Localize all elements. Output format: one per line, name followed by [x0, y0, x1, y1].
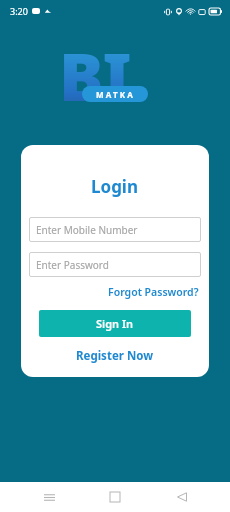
staticText: 3:20	[10, 5, 28, 17]
button[interactable]: Enter Password	[29, 252, 201, 277]
staticText: BIG	[59, 30, 171, 102]
button[interactable]: Back	[164, 482, 200, 512]
button[interactable]: Forgot Password?	[106, 283, 201, 301]
staticText: Forgot Password?	[108, 285, 199, 299]
staticText: MATKA	[96, 89, 135, 100]
staticText: Sign In	[96, 316, 134, 331]
staticText: Enter Mobile Number	[36, 223, 138, 237]
staticText: Login	[91, 175, 139, 198]
button[interactable]: Sign In	[39, 310, 191, 337]
button[interactable]: Home	[97, 482, 133, 512]
button[interactable]: Enter Mobile Number	[29, 217, 201, 242]
staticText: Register Now	[76, 348, 154, 364]
staticText: Enter Password	[36, 258, 109, 272]
button[interactable]: Recent apps	[31, 482, 67, 512]
button[interactable]: Register Now	[72, 346, 158, 366]
